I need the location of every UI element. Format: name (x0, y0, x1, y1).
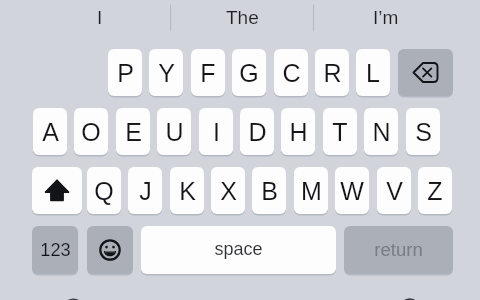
button[interactable]: return (344, 226, 453, 274)
staticText: F (200, 59, 216, 87)
button[interactable]: Emoji (87, 226, 133, 274)
staticText: V (386, 177, 403, 205)
button[interactable]: F (191, 49, 225, 96)
staticText: B (261, 177, 278, 205)
staticText: P (117, 59, 134, 87)
staticText: G (239, 59, 259, 87)
button[interactable]: N (364, 108, 398, 155)
staticText: return (374, 239, 423, 260)
button[interactable]: T (323, 108, 357, 155)
button[interactable]: I (199, 108, 233, 155)
staticText: U (165, 118, 184, 146)
button[interactable]: The (171, 0, 314, 34)
staticText: The (226, 7, 259, 28)
staticText: I (213, 118, 220, 146)
staticText: X (220, 177, 237, 205)
button[interactable]: Backspace (398, 49, 453, 96)
staticText: Q (94, 177, 114, 205)
staticText: K (179, 177, 196, 205)
button[interactable]: Q (87, 167, 121, 214)
button[interactable]: U (157, 108, 191, 155)
button[interactable]: G (232, 49, 266, 96)
button[interactable]: O (74, 108, 108, 155)
staticText: H (289, 118, 308, 146)
button[interactable]: S (406, 108, 440, 155)
staticText: J (139, 177, 152, 205)
button[interactable]: W (335, 167, 369, 214)
button[interactable]: J (128, 167, 162, 214)
button[interactable]: X (211, 167, 245, 214)
button[interactable]: Z (418, 167, 452, 214)
button[interactable]: E (116, 108, 150, 155)
button[interactable]: I’m (314, 0, 457, 34)
button[interactable]: H (281, 108, 315, 155)
staticText: Z (427, 177, 443, 205)
staticText: space (214, 239, 263, 259)
staticText: A (42, 118, 59, 146)
button[interactable]: V (377, 167, 411, 214)
staticText: W (340, 177, 364, 205)
staticText: E (125, 118, 142, 146)
button[interactable]: B (252, 167, 286, 214)
staticText: D (248, 118, 267, 146)
button[interactable]: A (33, 108, 67, 155)
staticText: C (282, 59, 301, 87)
button[interactable]: Y (149, 49, 183, 96)
button[interactable]: space (141, 226, 336, 274)
button[interactable]: P (108, 49, 142, 96)
button[interactable]: Shift (32, 167, 82, 214)
staticText: L (366, 59, 380, 87)
staticText: O (81, 118, 101, 146)
staticText: R (323, 59, 342, 87)
button[interactable]: M (294, 167, 328, 214)
staticText: 123 (40, 240, 71, 260)
staticText: I’m (373, 7, 399, 28)
button[interactable]: K (170, 167, 204, 214)
staticText: M (301, 177, 322, 205)
staticText: N (372, 118, 391, 146)
staticText: I (97, 7, 103, 28)
staticText: T (332, 118, 348, 146)
button[interactable]: L (356, 49, 390, 96)
button[interactable]: I (28, 0, 171, 34)
button[interactable]: 123 (32, 226, 78, 274)
button[interactable]: C (274, 49, 308, 96)
staticText: Y (158, 59, 175, 87)
button[interactable]: R (315, 49, 349, 96)
button[interactable]: D (240, 108, 274, 155)
staticText: S (415, 118, 432, 146)
